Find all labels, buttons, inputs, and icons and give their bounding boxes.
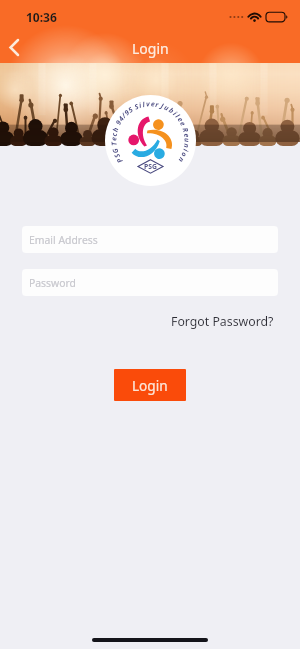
button[interactable]: Email Address [22,226,278,253]
staticText: Password [29,276,76,290]
staticText: Login [132,39,169,58]
button[interactable]: Login [114,369,186,401]
button[interactable]: Back [0,31,30,61]
staticText: Forgot Password? [171,313,274,330]
staticText: Login [132,376,168,395]
staticText: Email Address [29,233,98,247]
button[interactable]: Password [22,269,278,296]
button[interactable]: Forgot Password? [171,313,274,330]
staticText: 10:36 [26,9,57,25]
